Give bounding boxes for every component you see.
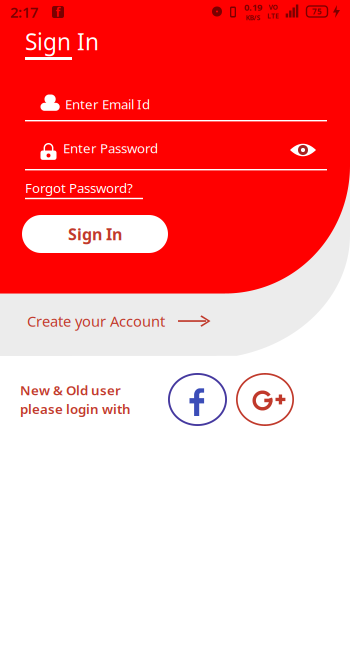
button[interactable]: Show password bbox=[289, 140, 317, 160]
staticText: KB/S bbox=[245, 13, 260, 22]
staticText: Sign In bbox=[68, 223, 122, 245]
button[interactable]: Create your Account bbox=[27, 311, 287, 331]
staticText: Sign In bbox=[25, 26, 99, 56]
staticText: please login with bbox=[20, 400, 131, 418]
staticText: Enter Password bbox=[63, 139, 158, 157]
staticText: LTE bbox=[267, 11, 279, 20]
button[interactable]: Sign in with Facebook bbox=[168, 373, 227, 426]
button[interactable]: Sign in with Google Plus bbox=[236, 373, 294, 426]
staticText: New & Old user bbox=[20, 381, 121, 399]
button[interactable]: Forgot Password? bbox=[25, 181, 205, 207]
staticText: 2:17 bbox=[10, 2, 38, 22]
staticText: 0.19 bbox=[244, 1, 262, 13]
staticText: VO bbox=[268, 3, 277, 11]
button[interactable]: Sign In bbox=[22, 215, 168, 253]
staticText: Forgot Password? bbox=[25, 179, 133, 197]
staticText: Enter Email Id bbox=[65, 95, 150, 113]
staticText: 75 bbox=[312, 6, 322, 17]
staticText: Create your Account bbox=[27, 311, 165, 331]
staticText: f bbox=[55, 4, 60, 20]
